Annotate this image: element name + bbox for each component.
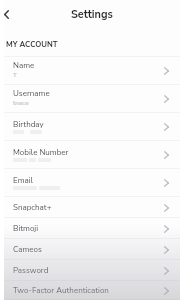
button[interactable]: Email (4, 169, 180, 197)
staticText: Birthday (13, 119, 44, 130)
button[interactable]: Mobile Number (4, 141, 180, 169)
staticText: Bitmoji (13, 223, 39, 234)
staticText: tnace (13, 99, 29, 108)
button[interactable]: Cameos (4, 239, 180, 260)
staticText: Name (13, 60, 35, 71)
button[interactable]: Birthday (4, 113, 180, 141)
staticText: Mobile Number (13, 147, 69, 158)
button[interactable]: Snapchat+ (4, 197, 180, 218)
staticText: Two-Factor Authentication (13, 285, 109, 296)
button[interactable]: Back (0, 7, 13, 21)
staticText: Username (13, 88, 50, 99)
staticText: Email (13, 175, 33, 186)
button[interactable]: Bitmoji (4, 218, 180, 239)
staticText: Snapchat+ (13, 202, 52, 213)
staticText: T (13, 71, 17, 80)
button[interactable]: Name (4, 57, 180, 85)
staticText: Cameos (13, 244, 42, 255)
staticText: Password (13, 265, 49, 276)
staticText: Settings (71, 7, 113, 22)
staticText: MY ACCOUNT (6, 39, 58, 50)
button[interactable]: Two-Factor Authentication (4, 281, 180, 300)
button[interactable]: Password (4, 260, 180, 281)
button[interactable]: Username (4, 85, 180, 113)
